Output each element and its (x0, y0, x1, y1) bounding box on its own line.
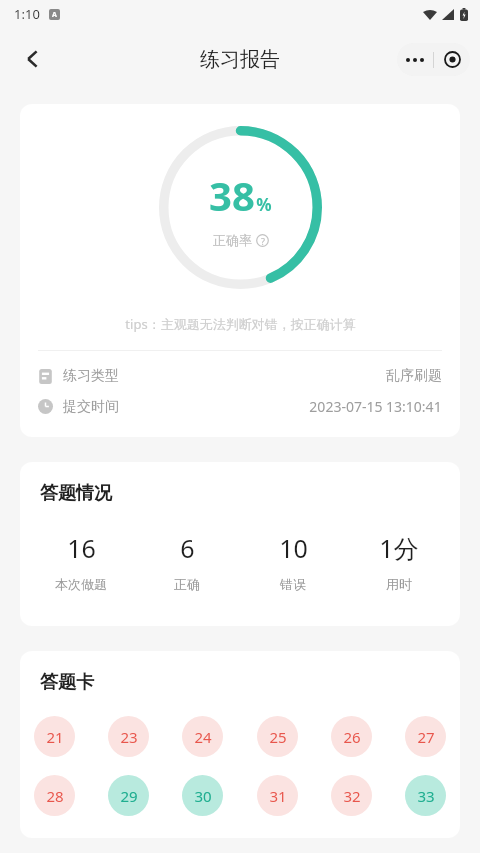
button[interactable]: 24 (182, 716, 223, 757)
staticText: 1分 (379, 531, 419, 565)
staticText: 31 (269, 786, 287, 806)
staticText: 24 (194, 727, 212, 747)
staticText: 正确率 (213, 232, 252, 248)
staticText: 1:10 (14, 5, 40, 23)
button[interactable]: 21 (34, 716, 75, 757)
staticText: 6 (180, 531, 195, 565)
button[interactable]: 28 (34, 775, 75, 816)
staticText: 25 (269, 727, 287, 747)
button[interactable]: Close (434, 43, 470, 76)
button[interactable]: 30 (182, 775, 223, 816)
button[interactable]: 6 (134, 531, 240, 592)
button[interactable]: Info (256, 234, 269, 247)
button[interactable]: 1分 (346, 531, 452, 592)
staticText: 30 (194, 786, 212, 806)
button[interactable]: 16 (28, 531, 134, 592)
staticText: 28 (46, 786, 64, 806)
staticText: 29 (120, 786, 138, 806)
button[interactable]: 10 (240, 531, 346, 592)
staticText: 练习报告 (200, 47, 280, 72)
staticText: A (52, 10, 57, 20)
staticText: 用时 (386, 576, 412, 592)
staticText: % (256, 193, 272, 216)
button[interactable]: 31 (257, 775, 298, 816)
staticText: 33 (417, 786, 435, 806)
staticText: 答题卡 (40, 671, 94, 694)
staticText: 答题情况 (40, 482, 112, 505)
staticText: 27 (417, 727, 435, 747)
staticText: 23 (120, 727, 138, 747)
button[interactable]: Back (10, 36, 56, 82)
button[interactable]: 29 (108, 775, 149, 816)
staticText: 21 (46, 727, 64, 747)
staticText: 26 (343, 727, 361, 747)
staticText: 提交时间 (63, 398, 119, 416)
button[interactable]: 26 (331, 716, 372, 757)
staticText: 32 (343, 786, 361, 806)
button[interactable]: 练习类型 (38, 367, 442, 385)
staticText: 16 (67, 531, 96, 565)
staticText: tips：主观题无法判断对错，按正确计算 (125, 315, 356, 333)
button[interactable]: 33 (405, 775, 446, 816)
staticText: 正确 (174, 576, 200, 592)
button[interactable]: 25 (257, 716, 298, 757)
staticText: 练习类型 (63, 367, 119, 385)
staticText: 38 (209, 168, 255, 222)
staticText: 错误 (280, 576, 306, 592)
button[interactable]: 32 (331, 775, 372, 816)
button[interactable]: 提交时间 (38, 397, 442, 416)
button[interactable]: 27 (405, 716, 446, 757)
staticText: 2023-07-15 13:10:41 (309, 397, 442, 416)
button[interactable]: 23 (108, 716, 149, 757)
staticText: 10 (279, 531, 308, 565)
staticText: 乱序刷题 (386, 367, 442, 385)
staticText: 本次做题 (55, 576, 107, 592)
staticText: ? (261, 235, 265, 247)
button[interactable]: More (397, 43, 433, 76)
